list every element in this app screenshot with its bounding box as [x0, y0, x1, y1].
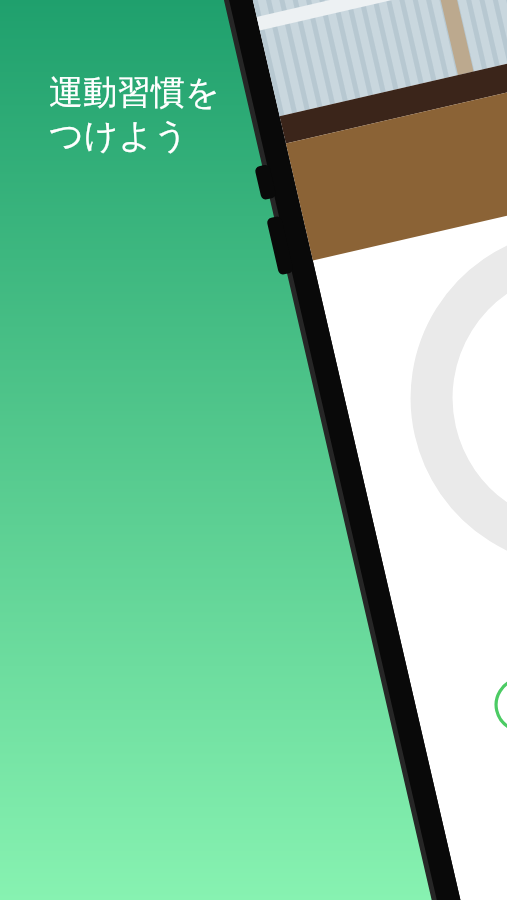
button[interactable]: リセット [414, 786, 494, 830]
button[interactable]: 開始 [428, 728, 507, 772]
staticText: つけよう [49, 114, 189, 157]
staticText: 運動習慣を [49, 71, 220, 114]
